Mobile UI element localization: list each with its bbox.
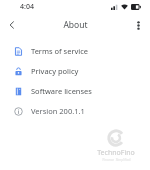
staticText: Finance Simplified bbox=[102, 158, 131, 162]
staticText: About bbox=[63, 19, 88, 31]
staticText: Terms of service bbox=[31, 46, 89, 56]
button[interactable]: Version 200.1.1 bbox=[0, 101, 150, 121]
staticText: 4:04 bbox=[20, 2, 34, 12]
staticText: Software licenses bbox=[31, 86, 92, 96]
button[interactable]: Terms of service bbox=[0, 41, 150, 61]
button[interactable]: Back bbox=[3, 16, 20, 33]
staticText: Privacy policy bbox=[31, 66, 79, 76]
button[interactable]: Software licenses bbox=[0, 81, 150, 101]
staticText: Version 200.1.1 bbox=[31, 106, 85, 116]
button[interactable]: More options bbox=[130, 17, 146, 33]
button[interactable]: Privacy policy bbox=[0, 61, 150, 81]
staticText: TechnoFino bbox=[97, 148, 135, 158]
